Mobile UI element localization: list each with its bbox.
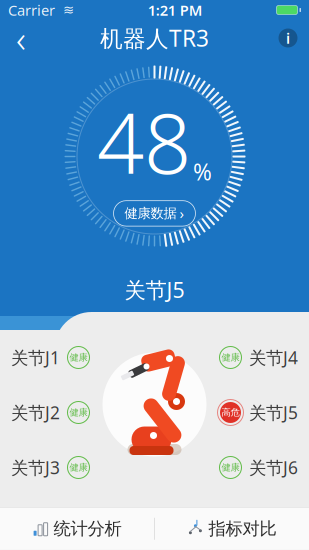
staticText: % (193, 156, 212, 187)
staticText: 统计分析 (54, 518, 122, 539)
button[interactable]: 关节J2 (8, 395, 92, 429)
staticText: 关节J4 (249, 346, 298, 369)
staticText: 关节J5 (124, 276, 184, 304)
staticText: 高危 (221, 407, 239, 418)
staticText: 健康数据 (124, 205, 176, 222)
button[interactable]: Back (0, 20, 42, 56)
button[interactable]: 高危 (217, 395, 301, 429)
button[interactable]: 关节J3 (8, 450, 92, 484)
staticText: 机器人TR3 (100, 23, 209, 53)
button[interactable]: 指标对比 (155, 508, 309, 550)
staticText: 健康 (221, 352, 239, 363)
button[interactable]: 统计分析 (0, 508, 154, 550)
button[interactable]: 健康数据 (113, 201, 195, 226)
button[interactable]: Info (267, 20, 309, 56)
staticText: i (286, 28, 290, 48)
staticText: 关节J3 (11, 456, 60, 479)
button[interactable]: 关节J1 (8, 340, 92, 374)
staticText: Carrier (8, 0, 55, 20)
staticText: 48 (97, 87, 191, 197)
staticText: 关节J6 (249, 456, 298, 479)
staticText: 关节J5 (249, 401, 298, 424)
staticText: 关节J1 (11, 346, 60, 369)
staticText: 1:21 PM (148, 0, 203, 20)
staticText: ≋ (63, 2, 74, 17)
staticText: 健康 (69, 462, 87, 473)
button[interactable]: 健康 (217, 340, 301, 374)
staticText: 关节J2 (11, 401, 60, 424)
staticText: 健康 (69, 352, 87, 363)
staticText: ‹ (16, 13, 26, 63)
staticText: 指标对比 (208, 518, 276, 539)
button[interactable]: 健康 (217, 450, 301, 484)
staticText: 健康 (69, 407, 87, 418)
staticText: 健康 (221, 462, 239, 473)
staticText: › (179, 204, 184, 223)
